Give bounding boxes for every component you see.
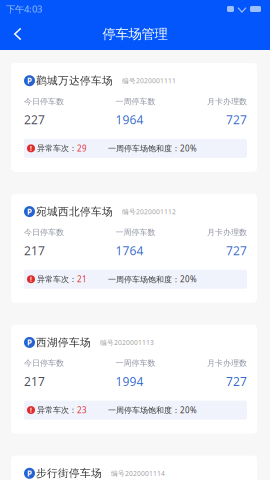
staticText: 下午4:03 — [6, 3, 42, 15]
staticText: P — [27, 468, 32, 479]
button[interactable]: P — [11, 63, 257, 172]
staticText: 月卡办理数 — [207, 96, 247, 106]
button[interactable]: 返回 — [4, 20, 32, 48]
staticText: 一周停车场饱和度：20% — [108, 405, 197, 415]
staticText: 727 — [226, 242, 247, 259]
staticText: 编号2020001113 — [100, 338, 154, 347]
staticText: 异常车次： — [37, 274, 77, 284]
staticText: 异常车次： — [37, 405, 77, 415]
staticText: 编号2020001111 — [122, 76, 176, 85]
staticText: ! — [30, 275, 32, 284]
staticText: 编号2020001114 — [111, 469, 165, 478]
staticText: 1964 — [115, 111, 143, 128]
staticText: 29 — [77, 143, 87, 154]
staticText: ! — [30, 405, 32, 415]
staticText: 一周停车数 — [115, 227, 155, 237]
staticText: P — [27, 206, 32, 217]
staticText: 一周停车场饱和度：20% — [108, 143, 197, 154]
staticText: 727 — [226, 111, 247, 128]
staticText: 月卡办理数 — [207, 227, 247, 237]
staticText: 227 — [24, 111, 45, 128]
staticText: 今日停车数 — [24, 227, 64, 237]
staticText: 217 — [24, 373, 45, 389]
staticText: 今日停车数 — [24, 96, 64, 106]
staticText: 宛城西北停车场 — [36, 205, 113, 218]
staticText: 步行街停车场 — [36, 467, 102, 480]
staticText: P — [27, 337, 32, 348]
staticText: 217 — [24, 242, 45, 259]
button[interactable]: P — [11, 325, 257, 434]
staticText: 停车场管理 — [102, 26, 167, 42]
staticText: 月卡办理数 — [207, 358, 247, 368]
staticText: 23 — [77, 405, 87, 415]
staticText: 异常车次： — [37, 143, 77, 153]
staticText: 一周停车数 — [115, 96, 155, 106]
staticText: 今日停车数 — [24, 358, 64, 368]
button[interactable]: P — [11, 456, 257, 480]
staticText: 21 — [77, 274, 87, 285]
staticText: 西湖停车场 — [36, 336, 91, 349]
staticText: 727 — [226, 373, 247, 389]
staticText: 1994 — [115, 373, 143, 389]
button[interactable]: P — [11, 194, 257, 303]
staticText: 一周停车数 — [115, 358, 155, 368]
staticText: 编号2020001112 — [122, 207, 176, 216]
staticText: ! — [30, 144, 32, 153]
staticText: P — [27, 75, 32, 86]
staticText: 1764 — [115, 242, 143, 259]
staticText: 一周停车场饱和度：20% — [108, 274, 197, 285]
staticText: 鹳城万达停车场 — [36, 74, 113, 87]
